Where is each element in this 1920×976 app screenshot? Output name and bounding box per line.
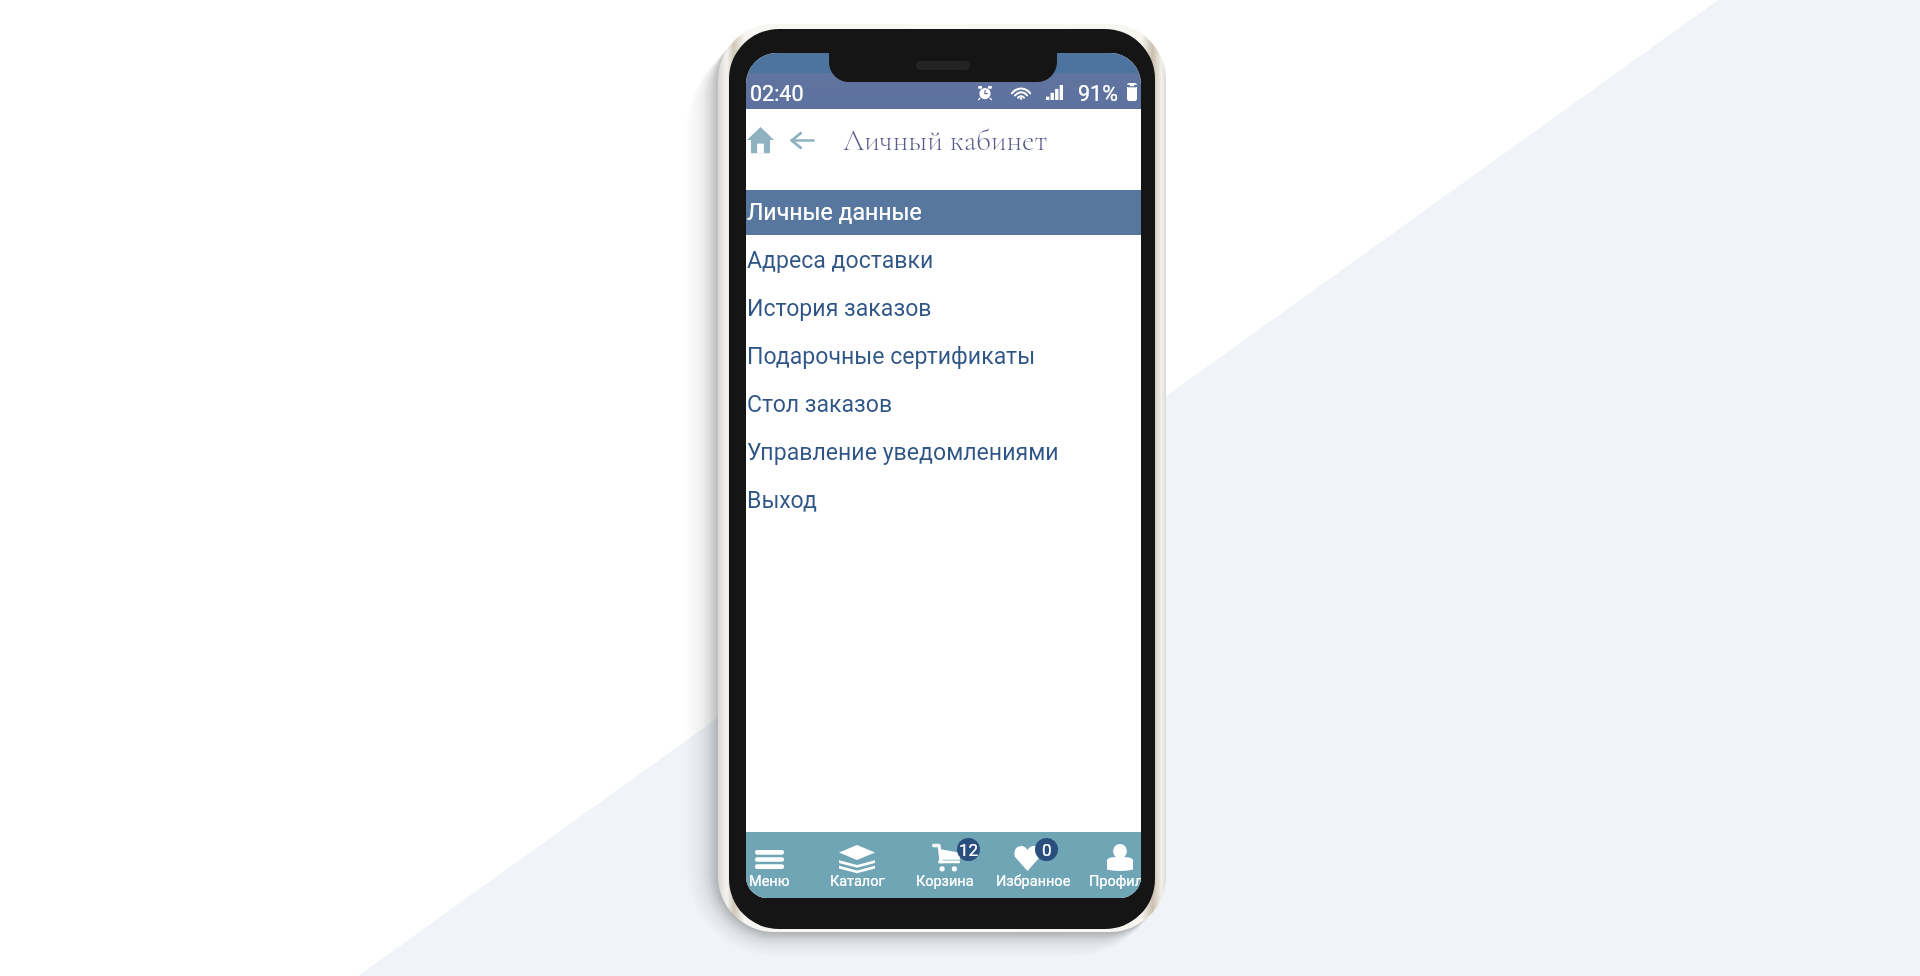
staticText: 02:40 — [750, 81, 804, 106]
staticText: Подарочные сертификаты — [747, 343, 1036, 370]
button[interactable]: Home — [746, 118, 778, 162]
button[interactable]: Стол заказов — [746, 382, 1141, 430]
staticText: Личные данные — [747, 199, 922, 226]
button[interactable]: Выход — [746, 478, 1141, 526]
button[interactable]: Управление уведомлениями — [746, 430, 1141, 478]
button[interactable]: Подарочные сертификаты — [746, 334, 1141, 382]
staticText: 12 — [959, 840, 979, 860]
button[interactable]: История заказов — [746, 286, 1141, 334]
button[interactable]: Меню — [746, 832, 813, 898]
button[interactable]: 0 — [989, 832, 1077, 898]
staticText: Выход — [747, 487, 817, 514]
staticText: Стол заказов — [747, 391, 893, 418]
button[interactable]: Личные данные — [746, 190, 1141, 238]
button[interactable]: Каталог — [813, 832, 901, 898]
staticText: Меню — [749, 873, 790, 890]
staticText: Личный кабинет — [843, 122, 1048, 159]
staticText: Управление уведомлениями — [747, 439, 1059, 466]
staticText: Корзина — [916, 873, 974, 890]
staticText: Профиль — [1089, 873, 1141, 890]
staticText: 0 — [1042, 840, 1052, 860]
button[interactable]: Адреса доставки — [746, 238, 1141, 286]
staticText: Избранное — [996, 873, 1071, 890]
button[interactable]: Профиль — [1077, 832, 1141, 898]
staticText: 91% — [1078, 81, 1118, 106]
staticText: Каталог — [830, 873, 885, 890]
button[interactable]: 12 — [901, 832, 989, 898]
staticText: История заказов — [747, 295, 932, 322]
button[interactable]: Back — [784, 118, 820, 162]
staticText: Адреса доставки — [747, 247, 934, 274]
